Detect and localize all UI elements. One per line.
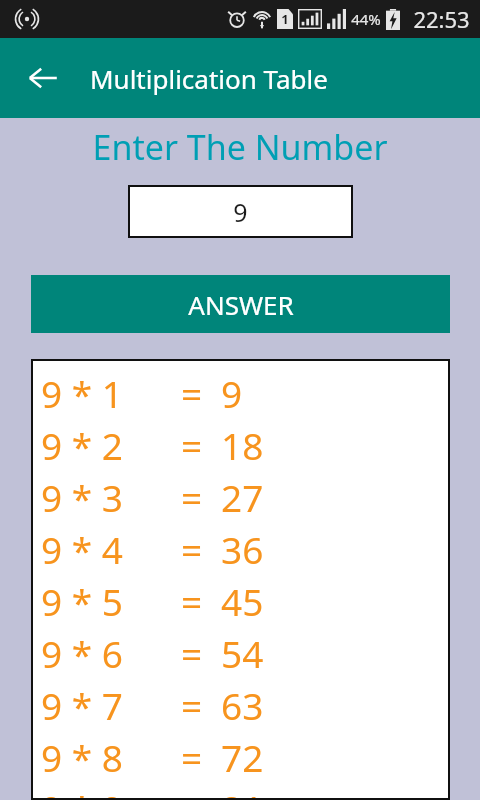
- button[interactable]: ANSWER: [31, 275, 450, 333]
- staticText: Multiplication Table: [90, 61, 328, 96]
- staticText: 9 * 8: [41, 732, 123, 782]
- staticText: 22:53: [413, 4, 470, 34]
- staticText: 9: [233, 195, 248, 229]
- staticText: 9 * 6: [41, 628, 123, 678]
- staticText: ANSWER: [188, 287, 294, 322]
- staticText: 54: [221, 628, 264, 678]
- button[interactable]: 9 * 6: [31, 627, 450, 679]
- button[interactable]: 9 * 8: [31, 731, 450, 783]
- staticText: 27: [221, 472, 264, 522]
- staticText: 63: [221, 680, 264, 730]
- button[interactable]: 9 * 2: [31, 419, 450, 471]
- staticText: =: [181, 680, 203, 730]
- staticText: 9 * 9: [41, 783, 123, 800]
- button[interactable]: 9: [128, 185, 353, 238]
- staticText: 45: [221, 576, 264, 626]
- staticText: 36: [221, 524, 264, 574]
- button[interactable]: 9 * 1: [31, 367, 450, 419]
- staticText: =: [181, 524, 203, 574]
- staticText: 9 * 7: [41, 680, 123, 730]
- staticText: 72: [221, 732, 264, 782]
- staticText: 9 * 2: [41, 420, 123, 470]
- staticText: =: [181, 420, 203, 470]
- staticText: 9 * 4: [41, 524, 123, 574]
- other: Cast: [16, 8, 38, 30]
- button[interactable]: 9 * 5: [31, 575, 450, 627]
- staticText: 44%: [351, 9, 381, 29]
- button[interactable]: 9 * 7: [31, 679, 450, 731]
- staticText: 9 * 1: [41, 368, 123, 418]
- button[interactable]: 9 * 3: [31, 471, 450, 523]
- staticText: 81: [221, 783, 264, 800]
- staticText: =: [181, 576, 203, 626]
- staticText: 9 * 3: [41, 472, 123, 522]
- staticText: =: [181, 628, 203, 678]
- staticText: 9: [221, 368, 243, 418]
- staticText: Enter The Number: [0, 124, 480, 170]
- staticText: =: [181, 472, 203, 522]
- button[interactable]: Back: [18, 53, 68, 103]
- button[interactable]: 9 * 9: [31, 783, 450, 800]
- staticText: 9 * 5: [41, 576, 123, 626]
- staticText: 1: [281, 10, 289, 28]
- staticText: =: [181, 732, 203, 782]
- staticText: =: [181, 368, 203, 418]
- button[interactable]: 9 * 4: [31, 523, 450, 575]
- staticText: =: [181, 783, 203, 800]
- staticText: 18: [221, 420, 264, 470]
